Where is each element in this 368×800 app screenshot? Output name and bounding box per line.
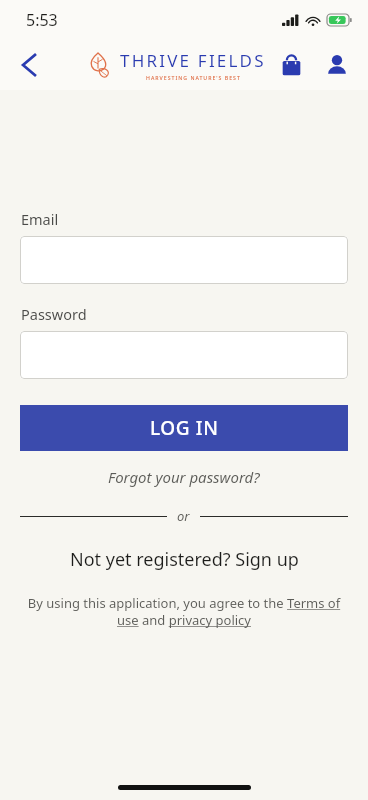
button[interactable] (20, 236, 348, 284)
staticText: or (177, 507, 190, 525)
button[interactable]: Not yet registered? Sign up (0, 547, 368, 572)
button[interactable]: Back (8, 44, 50, 86)
staticText: HARVESTING NATURE'S BEST (146, 74, 241, 81)
button[interactable]: Account (318, 46, 356, 84)
staticText: 5:53 (26, 9, 58, 31)
staticText: LOG IN (150, 415, 219, 441)
staticText: Email (21, 209, 59, 229)
staticText: By using this application, you agree to … (22, 594, 346, 629)
button[interactable]: By using this application, you agree to … (22, 594, 346, 629)
staticText: THRIVE FIELDS (120, 49, 266, 72)
staticText: Not yet registered? Sign up (70, 547, 299, 572)
button[interactable]: THRIVE FIELDS (86, 49, 266, 81)
button[interactable]: Forgot your password? (0, 467, 368, 487)
button[interactable]: LOG IN (20, 405, 348, 451)
button[interactable] (20, 331, 348, 379)
staticText: Forgot your password? (108, 467, 260, 487)
staticText: Password (21, 304, 87, 324)
button[interactable]: Cart (272, 46, 310, 84)
